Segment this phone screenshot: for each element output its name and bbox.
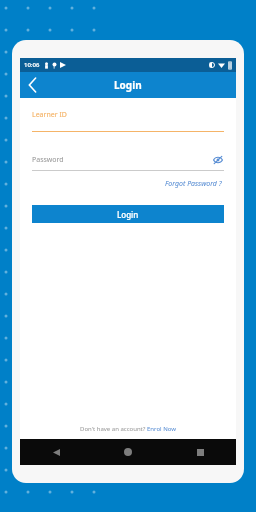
button[interactable]: Home <box>118 442 138 462</box>
button[interactable]: Forgot Password ? <box>163 177 224 191</box>
button[interactable]: Show password <box>212 154 224 166</box>
button[interactable]: Password <box>32 155 212 165</box>
staticText: Forgot Password ? <box>165 179 222 189</box>
button[interactable]: Back <box>20 73 44 97</box>
staticText: Login <box>117 209 139 220</box>
button[interactable]: Enrol Now <box>147 425 176 433</box>
staticText: Learner ID <box>32 110 67 120</box>
staticText: Don't have an account? <box>80 425 147 433</box>
button[interactable]: Back <box>46 442 66 462</box>
button[interactable]: Recent apps <box>190 442 210 462</box>
staticText: 10:06 <box>24 61 40 69</box>
staticText: Login <box>114 78 142 92</box>
button[interactable]: Login <box>32 205 224 223</box>
staticText: Password <box>32 155 64 165</box>
staticText: Enrol Now <box>147 425 176 433</box>
button[interactable]: Learner ID <box>32 110 224 132</box>
